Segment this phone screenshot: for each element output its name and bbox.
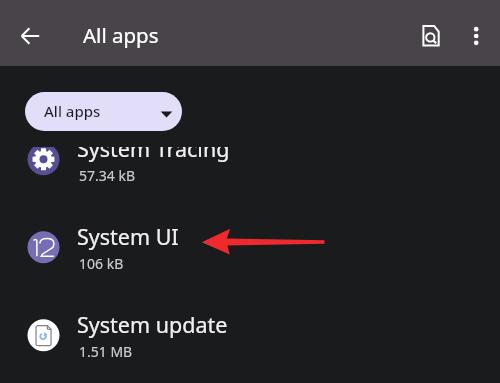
staticText: System update	[77, 310, 228, 339]
button[interactable]: All apps	[25, 92, 182, 131]
button[interactable]: System UI	[0, 203, 500, 291]
staticText: All apps	[44, 101, 101, 121]
button[interactable]: Navigate up	[12, 16, 52, 56]
staticText: 57.34 kB	[79, 166, 135, 185]
button[interactable]: Search apps	[412, 16, 452, 56]
staticText: 1.51 MB	[79, 342, 133, 361]
staticText: All apps	[83, 21, 159, 49]
button[interactable]: More options	[456, 16, 496, 56]
staticText: 106 kB	[79, 254, 124, 273]
button[interactable]: System Tracing	[0, 147, 500, 203]
button[interactable]: System update	[0, 291, 500, 379]
staticText: System UI	[77, 222, 179, 251]
staticText: System Tracing	[77, 147, 230, 163]
